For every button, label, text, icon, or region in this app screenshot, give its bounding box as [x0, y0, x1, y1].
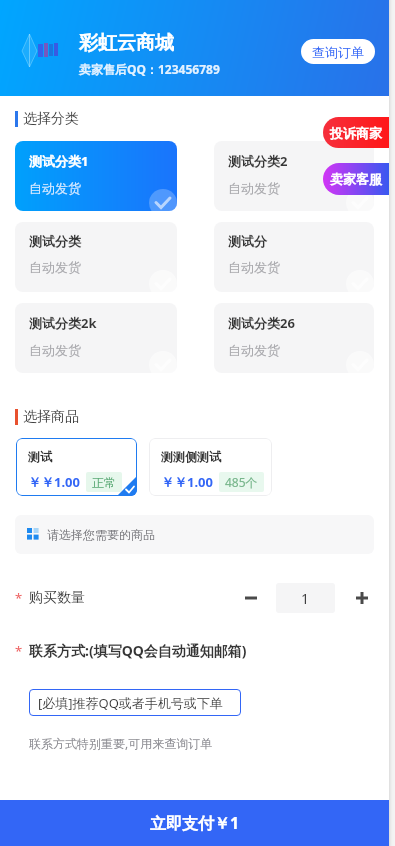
staticText: 测试分类2 — [228, 152, 288, 170]
staticText: 正常 — [92, 475, 116, 490]
staticText: 联系方式特别重要,可用来查询订单 — [29, 735, 213, 751]
staticText: 卖家客服 — [330, 171, 382, 187]
staticText: 自动发货 — [29, 342, 81, 358]
button[interactable]: 测试分类 — [15, 222, 177, 292]
button[interactable]: 测测侧测试 — [149, 438, 272, 496]
staticText: 立即支付￥1 — [150, 812, 240, 834]
button[interactable]: 测试分 — [214, 222, 374, 292]
staticText: 测试分类2k — [29, 314, 97, 332]
button[interactable]: 减少数量 — [237, 583, 264, 613]
staticText: 测试分类1 — [29, 152, 89, 170]
staticText: 自动发货 — [228, 259, 280, 275]
button[interactable]: 立即支付￥1 — [0, 800, 389, 846]
staticText: 选择分类 — [23, 110, 79, 127]
staticText: 自动发货 — [228, 342, 280, 358]
staticText: 请选择您需要的商品 — [47, 527, 155, 542]
staticText: * — [15, 589, 23, 607]
staticText: 查询订单 — [312, 44, 364, 60]
button[interactable]: 投诉商家 — [323, 117, 389, 148]
button[interactable]: 增加数量 — [348, 583, 375, 613]
staticText: 1 — [301, 589, 310, 608]
button[interactable]: 测试分类26 — [214, 303, 374, 373]
button[interactable]: 测试分类2 — [214, 141, 374, 211]
staticText: 彩虹云商城 — [79, 31, 174, 55]
staticText: 自动发货 — [29, 259, 81, 275]
staticText: 485个 — [225, 474, 258, 490]
staticText: 投诉商家 — [330, 125, 382, 141]
button[interactable]: 查询订单 — [301, 39, 375, 64]
staticText: 测测侧测试 — [161, 449, 221, 464]
staticText: ￥￥1.00 — [28, 473, 80, 491]
staticText: 测试 — [28, 449, 52, 464]
button[interactable]: [必填]推荐QQ或者手机号或下单 — [29, 689, 241, 716]
staticText: 测试分类26 — [228, 314, 295, 332]
staticText: [必填]推荐QQ或者手机号或下单 — [38, 694, 223, 712]
staticText: 自动发货 — [29, 180, 81, 196]
staticText: 选择商品 — [23, 408, 79, 425]
staticText: ￥￥1.00 — [161, 473, 213, 491]
staticText: 自动发货 — [228, 180, 280, 196]
staticText: 测试分 — [228, 233, 267, 249]
staticText: 卖家售后QQ：123456789 — [79, 61, 220, 77]
button[interactable]: 测试分类1 — [15, 141, 177, 211]
staticText: 购买数量 — [29, 589, 85, 607]
button[interactable]: 1 — [276, 583, 335, 613]
staticText: * — [15, 642, 23, 660]
staticText: 测试分类 — [29, 233, 81, 249]
button[interactable]: 卖家客服 — [323, 163, 389, 195]
staticText: 联系方式:(填写QQ会自动通知邮箱) — [29, 641, 247, 660]
button[interactable]: 测试 — [16, 438, 137, 496]
button[interactable]: 测试分类2k — [15, 303, 177, 373]
